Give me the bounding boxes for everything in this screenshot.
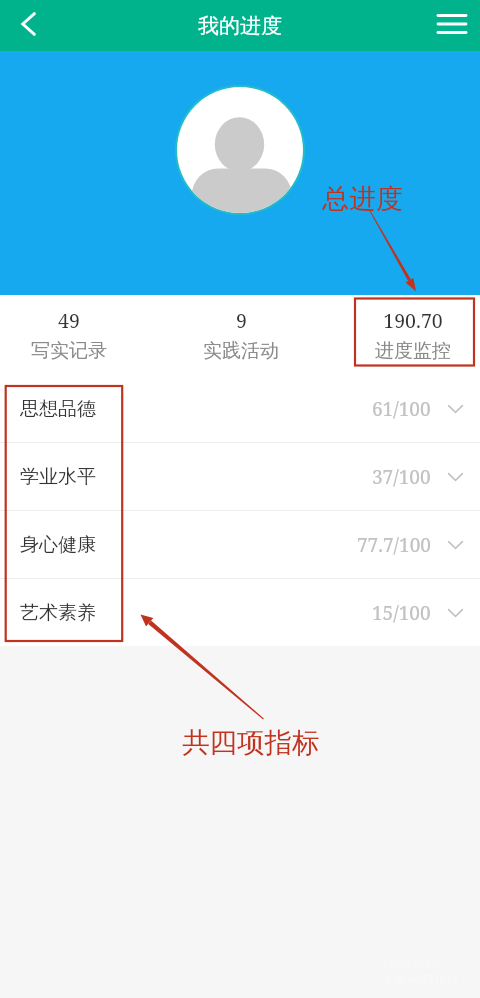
staticText: 共四项指标 bbox=[182, 726, 320, 761]
staticText: 77.7/100 bbox=[357, 532, 431, 558]
staticText: 61/100 bbox=[372, 396, 431, 422]
button[interactable]: 身心健康 bbox=[0, 511, 480, 578]
button[interactable]: 49 bbox=[0, 295, 149, 375]
staticText: 15/100 bbox=[372, 600, 431, 626]
button[interactable]: 艺术素养 bbox=[0, 579, 480, 646]
button[interactable]: 思想品德 bbox=[0, 375, 480, 442]
staticText: 实践活动 bbox=[203, 339, 279, 363]
staticText: 我的进度 bbox=[198, 13, 282, 39]
staticText: 9 bbox=[236, 307, 247, 334]
staticText: 49 bbox=[58, 307, 80, 334]
button[interactable]: 190.70 bbox=[333, 295, 480, 375]
staticText: 思想品德 bbox=[20, 397, 96, 421]
staticText: 进度监控 bbox=[375, 339, 451, 363]
button[interactable]: 学业水平 bbox=[0, 443, 480, 510]
staticText: 学业水平 bbox=[20, 465, 96, 489]
button[interactable]: Back bbox=[0, 0, 56, 51]
button[interactable]: 9 bbox=[161, 295, 321, 375]
staticText: 写实记录 bbox=[31, 339, 107, 363]
staticText: 37/100 bbox=[372, 464, 431, 490]
staticText: 总进度 bbox=[322, 182, 403, 216]
staticText: 艺术素养 bbox=[20, 601, 96, 625]
staticText: 身心健康 bbox=[20, 533, 96, 557]
button[interactable]: Menu bbox=[424, 0, 480, 51]
staticText: 190.70 bbox=[383, 307, 443, 334]
